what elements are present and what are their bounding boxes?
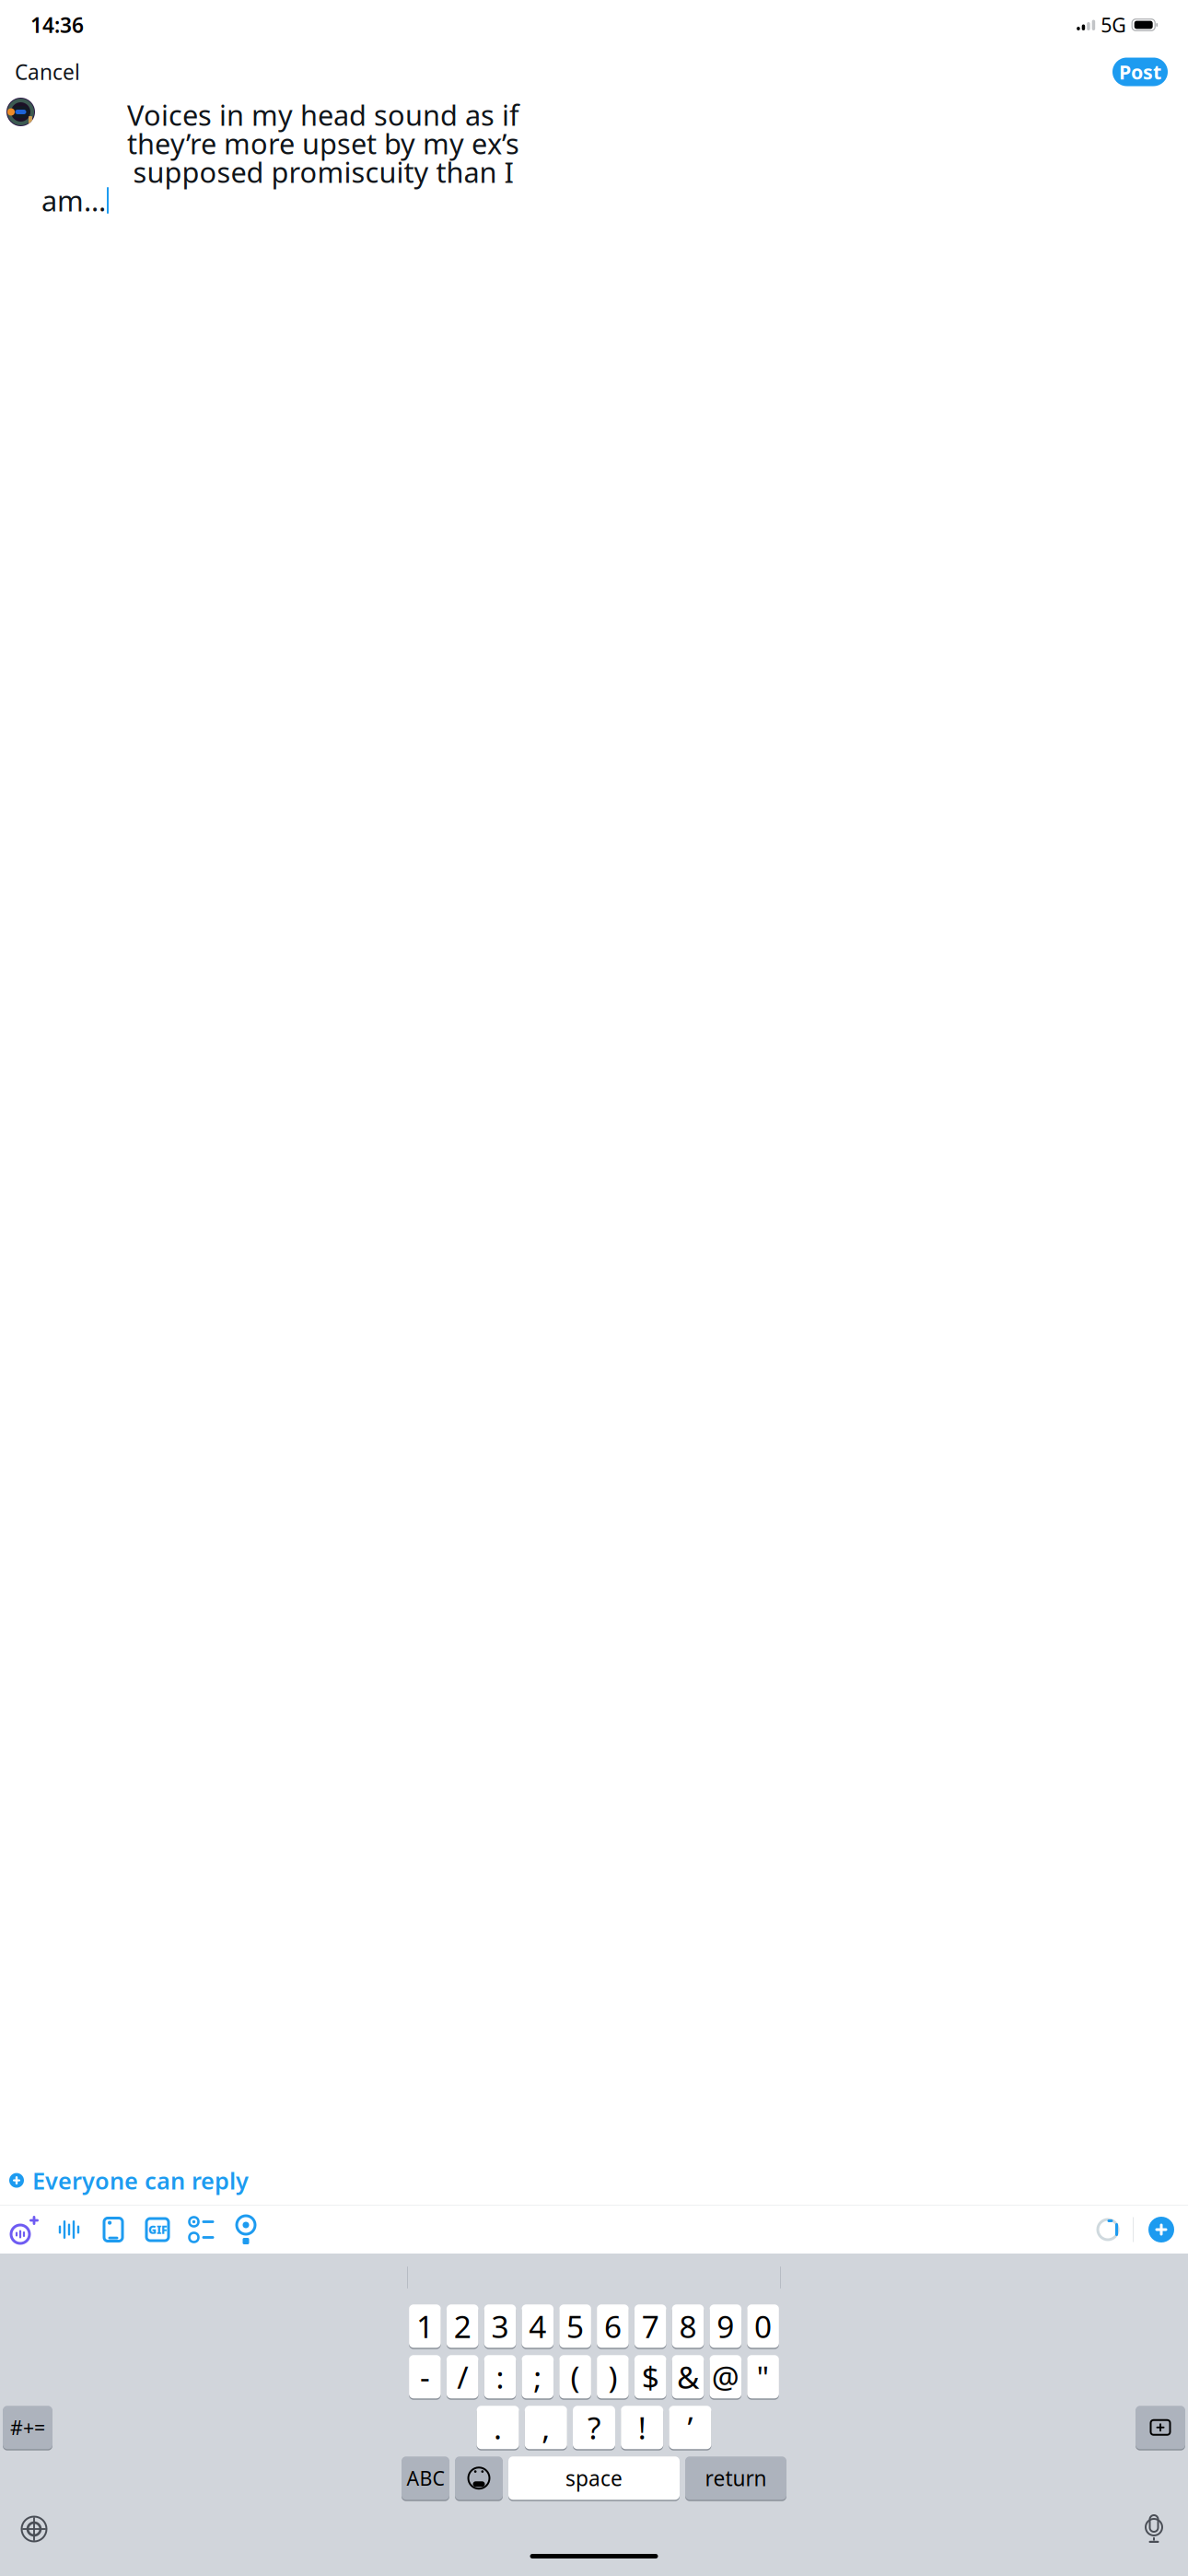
button[interactable]: 7 — [634, 2304, 666, 2349]
button[interactable]: / — [447, 2355, 478, 2400]
button[interactable]: #+= — [3, 2406, 52, 2450]
staticText: . — [494, 2407, 502, 2448]
staticText: 9 — [717, 2306, 734, 2347]
staticText: Everyone can reply — [32, 2165, 249, 2196]
button[interactable]: 9 — [710, 2304, 741, 2349]
staticText: 3 — [491, 2306, 509, 2347]
staticText: Cancel — [15, 58, 80, 86]
button[interactable]: Delete — [1136, 2406, 1185, 2450]
button[interactable]: Add photo — [91, 2207, 135, 2252]
staticText: / — [457, 2356, 468, 2397]
staticText: ; — [533, 2356, 542, 2397]
button[interactable]: ; — [522, 2355, 554, 2400]
staticText: they’re more upset by my ex’s — [127, 124, 519, 162]
button[interactable]: @ — [710, 2355, 741, 2400]
staticText: #+= — [10, 2414, 45, 2440]
staticText: ! — [638, 2407, 646, 2448]
staticText: 0 — [754, 2306, 772, 2347]
button[interactable]: Emoji keyboard — [455, 2456, 503, 2501]
staticText: 8 — [679, 2306, 697, 2347]
button[interactable]: ( — [559, 2355, 591, 2400]
button[interactable]: 8 — [672, 2304, 704, 2349]
button[interactable]: Voice recording — [47, 2207, 91, 2252]
button[interactable]: 3 — [484, 2304, 516, 2349]
button[interactable]: 4 — [522, 2304, 554, 2349]
staticText: : — [496, 2356, 504, 2397]
button[interactable]: 1 — [409, 2304, 441, 2349]
button[interactable]: Add poll — [180, 2207, 224, 2252]
staticText: $ — [642, 2356, 659, 2397]
staticText: ) — [608, 2356, 617, 2397]
button[interactable]: ! — [621, 2406, 663, 2450]
staticText: Post — [1119, 59, 1161, 85]
button[interactable]: Post — [1112, 58, 1168, 86]
button[interactable]: Next keyboard — [10, 2508, 58, 2550]
button[interactable]: 2 — [447, 2304, 478, 2349]
button[interactable]: ? — [573, 2406, 615, 2450]
staticText: 2 — [454, 2306, 471, 2347]
button[interactable]: : — [484, 2355, 516, 2400]
button[interactable]: Add GIF — [135, 2207, 180, 2252]
button[interactable]: Profile photo — [6, 98, 35, 126]
button[interactable]: , — [525, 2406, 567, 2450]
button[interactable]: Dictation — [1130, 2508, 1178, 2550]
button[interactable]: ) — [597, 2355, 629, 2400]
button[interactable]: ABC — [402, 2456, 449, 2501]
staticText: , — [542, 2407, 550, 2448]
button[interactable]: 6 — [597, 2304, 629, 2349]
staticText: 7 — [642, 2306, 659, 2347]
staticText: 14:36 — [30, 11, 84, 39]
button[interactable]: Cancel — [11, 51, 84, 93]
button[interactable]: 5 — [559, 2304, 591, 2349]
button[interactable]: $ — [634, 2355, 666, 2400]
staticText: ? — [588, 2407, 600, 2448]
staticText: space — [565, 2464, 623, 2492]
button[interactable]: " — [747, 2355, 779, 2400]
staticText: Voices in my head sound as if — [127, 96, 519, 133]
staticText: " — [757, 2356, 770, 2397]
staticText: 6 — [604, 2306, 622, 2347]
staticText: GIF — [148, 2222, 167, 2237]
staticText: 5 — [566, 2306, 584, 2347]
staticText: 4 — [529, 2306, 546, 2347]
staticText: 1 — [416, 2306, 434, 2347]
staticText: return — [705, 2464, 767, 2492]
staticText: am... — [41, 182, 106, 219]
staticText: ABC — [407, 2465, 444, 2491]
button[interactable]: . — [477, 2406, 519, 2450]
button[interactable]: return — [685, 2456, 786, 2501]
button[interactable]: & — [672, 2355, 704, 2400]
button[interactable]: - — [409, 2355, 441, 2400]
button[interactable]: Add location — [224, 2207, 268, 2252]
staticText: @ — [712, 2356, 739, 2397]
button[interactable]: ’ — [669, 2406, 711, 2450]
button[interactable]: Everyone can reply — [0, 2156, 1188, 2205]
staticText: 5G — [1101, 12, 1126, 38]
button[interactable]: Add audio — [3, 2207, 47, 2252]
button[interactable]: space — [508, 2456, 680, 2501]
staticText: supposed promiscuity than I — [133, 153, 513, 191]
button[interactable]: 0 — [747, 2304, 779, 2349]
staticText: ’ — [687, 2407, 693, 2448]
staticText: & — [677, 2356, 699, 2397]
staticText: - — [420, 2356, 430, 2397]
staticText: ( — [571, 2356, 580, 2397]
button[interactable]: Add another post — [1145, 2213, 1178, 2246]
